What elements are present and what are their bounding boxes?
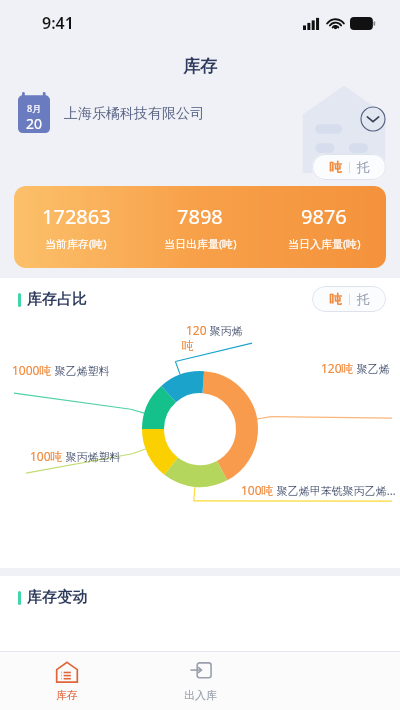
staticText: 8月 [27, 102, 42, 114]
staticText: 聚丙烯塑料 [63, 449, 121, 464]
button[interactable]: 172863 [14, 186, 386, 268]
staticText: 吨 [329, 291, 342, 307]
staticText: 上海乐橘科技有限公司 [64, 105, 204, 123]
staticText: 当前库存(吨) [45, 236, 107, 251]
staticText: 库存变动 [27, 588, 87, 607]
staticText: 100吨 [241, 482, 274, 498]
staticText: 当日入库量(吨) [288, 236, 361, 251]
staticText: 9:41 [42, 12, 74, 34]
button[interactable]: 库存 [0, 652, 134, 710]
staticText: 聚乙烯甲苯铣聚丙乙烯… [274, 483, 396, 498]
staticText: 库存 [56, 688, 78, 702]
staticText: 20 [26, 114, 43, 133]
staticText: 聚乙烯塑料 [52, 363, 110, 378]
staticText: 吨 [329, 159, 342, 175]
staticText: 120 [186, 322, 207, 338]
staticText: 出入库 [184, 688, 217, 702]
staticText: 库存 [183, 56, 217, 77]
button[interactable]: 吨 [312, 286, 386, 312]
button[interactable]: 出入库 [134, 652, 267, 710]
button[interactable]: 8月 [14, 92, 204, 136]
staticText: 库存占比 [27, 290, 87, 309]
staticText: 100吨 [30, 448, 63, 464]
staticText: 托 [357, 159, 370, 175]
staticText: 172863 [42, 203, 111, 230]
staticText: 当日出库量(吨) [164, 236, 237, 251]
button[interactable]: 吨 [312, 154, 386, 180]
staticText: 吨 [182, 338, 194, 353]
staticText: 7898 [177, 203, 223, 230]
staticText: 1000吨 [12, 362, 52, 378]
staticText: 9876 [301, 203, 347, 230]
staticText: 聚乙烯 [354, 361, 390, 376]
staticText: 托 [357, 291, 370, 307]
staticText: 聚丙烯 [207, 323, 243, 338]
button[interactable]: 展开 [360, 106, 386, 132]
staticText: 120吨 [321, 360, 354, 376]
